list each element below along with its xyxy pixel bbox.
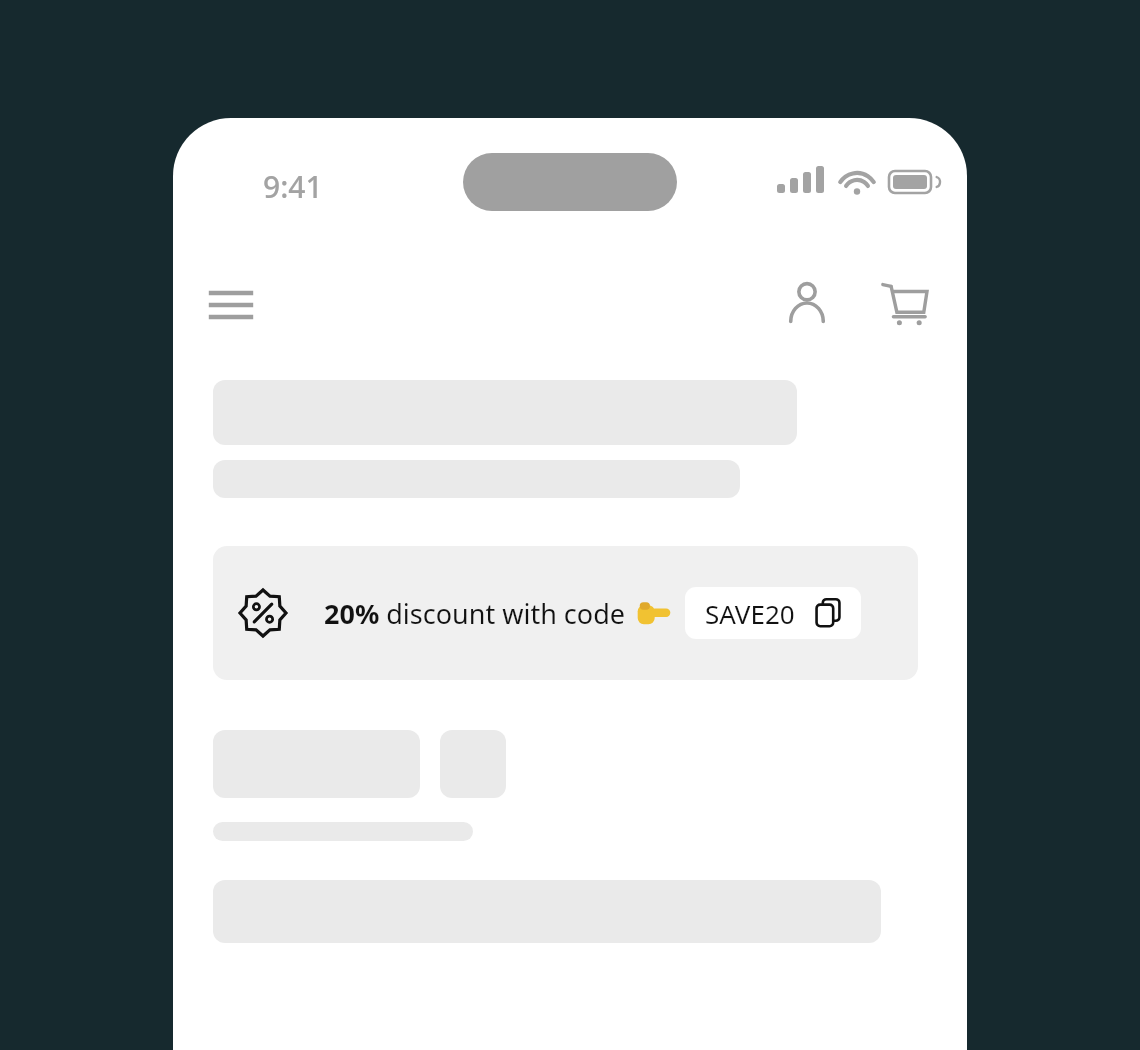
staticText: 20% discount with code [324,595,625,632]
button[interactable]: Cart [869,268,939,338]
button[interactable]: 20% discount with code [213,546,918,680]
staticText: SAVE20 [705,596,795,631]
button[interactable]: Menu [199,273,263,337]
other: Copy code [815,598,841,628]
button[interactable]: SAVE20 [685,587,861,639]
staticText: 9:41 [263,166,323,206]
button[interactable]: Account [772,268,842,338]
